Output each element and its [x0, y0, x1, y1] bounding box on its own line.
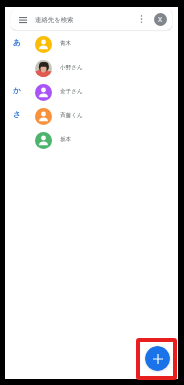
button[interactable]: さ [5, 104, 178, 128]
staticText: X [158, 15, 163, 25]
staticText: か [13, 86, 21, 95]
staticText: 連絡先を検索 [35, 16, 74, 24]
staticText: さ [13, 110, 21, 119]
button[interactable]: Account [154, 13, 167, 26]
staticText: あ [13, 38, 21, 47]
staticText: 小野さん [60, 64, 83, 71]
button[interactable]: か [5, 80, 178, 104]
button[interactable]: 坂本 [5, 128, 178, 152]
button[interactable]: 小野さん [5, 56, 178, 80]
button[interactable]: Open navigation drawer [18, 15, 28, 25]
button[interactable]: あ [5, 32, 178, 56]
staticText: 金子さん [60, 88, 83, 95]
button[interactable]: Create new contact [145, 346, 170, 371]
staticText: 坂本 [60, 136, 72, 143]
button[interactable]: Open navigation drawer [11, 9, 172, 30]
button[interactable]: More options [133, 14, 145, 26]
staticText: 青木 [60, 40, 72, 47]
staticText: 斉藤くん [60, 112, 83, 119]
